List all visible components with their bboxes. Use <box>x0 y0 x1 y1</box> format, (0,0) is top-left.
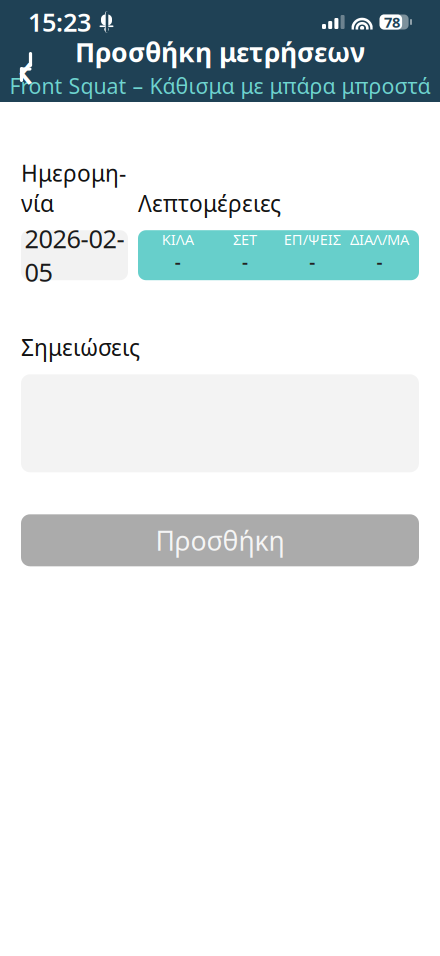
staticText: ‹ <box>17 32 34 102</box>
staticText: Προσθήκη <box>155 523 284 558</box>
staticText: ΣΕΤ <box>233 230 257 249</box>
staticText: Προσθήκη μετρήσεων <box>75 34 365 69</box>
staticText: Λεπτομέρειες <box>138 188 281 218</box>
button[interactable]: 2026-02-05 <box>21 230 128 280</box>
staticText: Σημειώσεις <box>21 332 140 362</box>
staticText: 15:23 <box>28 5 91 39</box>
staticText: - <box>175 249 181 274</box>
staticText: 78 <box>384 12 400 32</box>
staticText: Ημερομηνία <box>21 158 126 218</box>
staticText: ΔΙΑΛ/ΜΑ <box>350 230 409 249</box>
staticText: 2026-02-05 <box>24 222 124 289</box>
button[interactable]: Back <box>0 41 52 93</box>
staticText: - <box>309 249 315 274</box>
staticText: - <box>376 249 382 274</box>
staticText: ΚΙΛΑ <box>162 230 194 249</box>
staticText: - <box>242 249 248 274</box>
staticText: Front Squat – Κάθισμα με μπάρα μπροστά <box>9 71 430 100</box>
staticText: ΕΠ/ΨΕΙΣ <box>284 230 341 249</box>
button[interactable]: Προσθήκη <box>21 514 419 566</box>
